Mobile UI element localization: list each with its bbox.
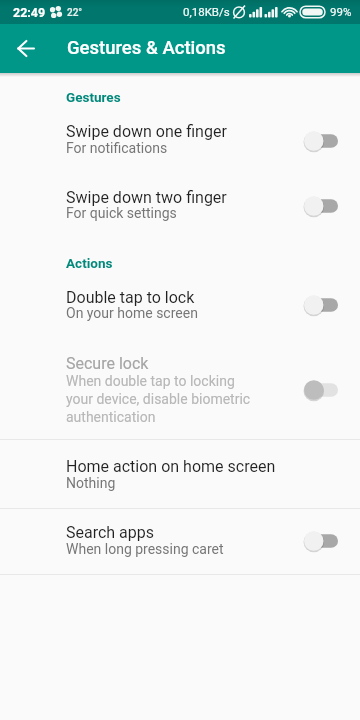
button[interactable]: Search apps [0,509,360,574]
staticText: Gestures [66,89,121,105]
staticText: For quick settings [66,205,177,221]
staticText: On your home screen [66,305,198,321]
staticText: 0,18KB/s [183,5,230,18]
button[interactable]: Swipe down one finger [0,106,360,172]
staticText: Search apps [66,523,155,542]
staticText: 22:49 [13,5,46,20]
button[interactable]: Home action on home screen [0,440,360,508]
staticText: Swipe down two finger [66,188,227,207]
staticText: For notifications [66,140,168,156]
staticText: Gestures & Actions [67,37,226,59]
staticText: Double tap to lock [66,288,195,307]
staticText: Nothing [66,475,116,491]
button[interactable]: Double tap to lock [0,272,360,338]
staticText: Actions [66,255,113,271]
staticText: Swipe down one finger [66,122,227,141]
button[interactable]: Secure lock [0,338,360,439]
staticText: Home action on home screen [66,457,276,476]
staticText: 22° [67,7,83,19]
staticText: When long pressing caret [66,541,224,557]
staticText: 99% [330,5,352,18]
staticText: Secure lock [66,354,149,373]
staticText: When double tap to locking your device, … [66,373,251,426]
button[interactable] [10,33,42,65]
button[interactable]: Swipe down two finger [0,172,360,238]
